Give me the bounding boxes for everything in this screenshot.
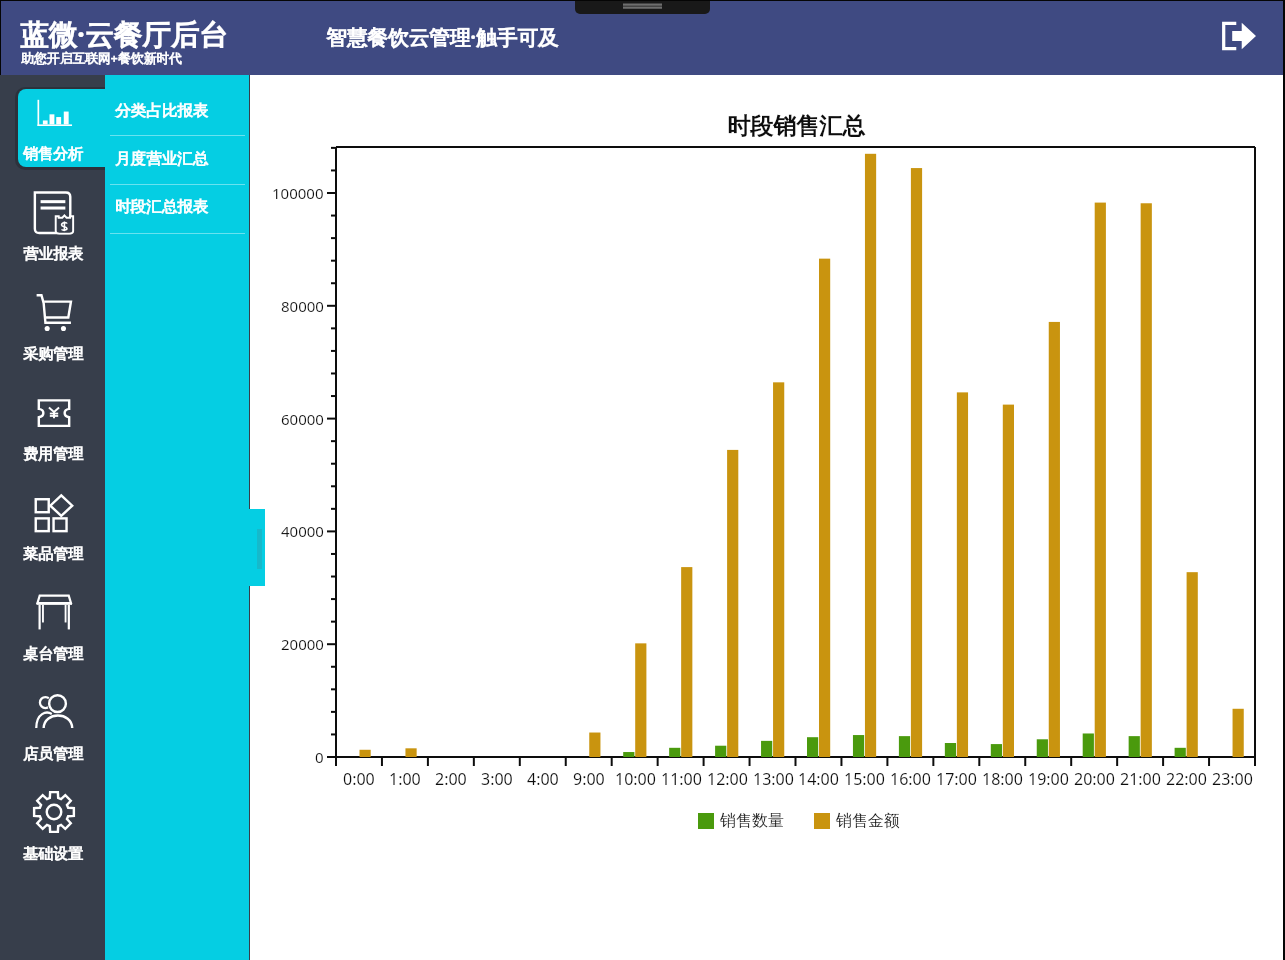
- staticText: 40000: [281, 521, 324, 541]
- staticText: 助您开启互联网+餐饮新时代: [21, 49, 182, 66]
- staticText: 9:00: [573, 768, 605, 790]
- staticText: 13:00: [753, 768, 794, 790]
- button[interactable]: [0, 599, 105, 679]
- staticText: 11:00: [661, 768, 702, 790]
- staticText: 销售数量: [720, 811, 784, 831]
- staticText: 月度营业汇总: [115, 149, 208, 169]
- button[interactable]: [0, 199, 105, 279]
- staticText: 19:00: [1028, 768, 1069, 790]
- staticText: 10:00: [615, 768, 656, 790]
- staticText: 15:00: [844, 768, 885, 790]
- button[interactable]: 月度营业汇总: [105, 135, 249, 183]
- button[interactable]: [0, 99, 105, 179]
- staticText: 营业报表: [23, 245, 83, 264]
- staticText: 100000: [272, 183, 324, 203]
- staticText: 销售分析: [23, 145, 83, 164]
- button[interactable]: 分类占比报表: [105, 87, 249, 135]
- staticText: 4:00: [527, 768, 559, 790]
- staticText: 销售金额: [836, 811, 900, 831]
- staticText: 21:00: [1120, 768, 1161, 790]
- button[interactable]: [0, 399, 105, 479]
- button[interactable]: [0, 499, 105, 579]
- staticText: 16:00: [890, 768, 931, 790]
- staticText: 0:00: [343, 768, 375, 790]
- button[interactable]: [18, 89, 105, 167]
- staticText: 费用管理: [23, 445, 83, 464]
- staticText: 分类占比报表: [115, 101, 208, 121]
- staticText: 18:00: [982, 768, 1023, 790]
- button[interactable]: [0, 299, 105, 379]
- staticText: 采购管理: [23, 345, 83, 364]
- staticText: 60000: [281, 409, 324, 429]
- button[interactable]: 折叠菜单: [235, 509, 265, 586]
- staticText: 菜品管理: [23, 545, 83, 564]
- staticText: 时段汇总报表: [115, 197, 208, 217]
- button[interactable]: 时段汇总报表: [105, 183, 249, 231]
- staticText: 0: [315, 747, 324, 767]
- staticText: 智慧餐饮云管理·触手可及: [326, 23, 559, 51]
- button[interactable]: [0, 799, 105, 879]
- staticText: 基础设置: [23, 845, 83, 864]
- staticText: 20000: [281, 634, 324, 654]
- staticText: 23:00: [1212, 768, 1253, 790]
- staticText: 80000: [281, 296, 324, 316]
- staticText: 3:00: [481, 768, 513, 790]
- staticText: 1:00: [389, 768, 421, 790]
- button[interactable]: 退出登录: [1215, 12, 1263, 60]
- staticText: 2:00: [435, 768, 467, 790]
- staticText: 17:00: [936, 768, 977, 790]
- staticText: 12:00: [707, 768, 748, 790]
- staticText: 蓝微·云餐厅后台: [20, 15, 228, 51]
- staticText: 22:00: [1166, 768, 1207, 790]
- staticText: 20:00: [1074, 768, 1115, 790]
- staticText: 店员管理: [23, 745, 83, 764]
- button[interactable]: [0, 699, 105, 779]
- staticText: 桌台管理: [23, 645, 83, 664]
- staticText: 时段销售汇总: [727, 112, 865, 141]
- staticText: 14:00: [798, 768, 839, 790]
